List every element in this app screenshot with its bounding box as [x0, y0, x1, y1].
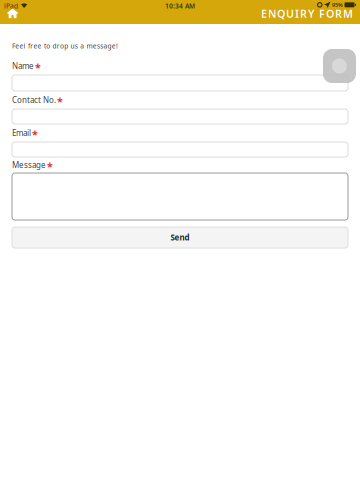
- staticText: Feel free to drop us a message!: [12, 42, 118, 50]
- staticText: ENQUIRY FORM: [261, 6, 353, 21]
- staticText: Send: [170, 232, 189, 243]
- staticText: 95%: [332, 1, 343, 8]
- staticText: *: [32, 127, 38, 141]
- staticText: iPad: [4, 1, 18, 10]
- staticText: 10:34 AM: [165, 1, 195, 10]
- staticText: *: [57, 94, 63, 108]
- button[interactable]: Home: [0, 0, 25, 22]
- staticText: Message: [12, 160, 46, 170]
- staticText: Name: [12, 61, 34, 71]
- staticText: *: [47, 159, 53, 173]
- staticText: Email: [12, 128, 31, 138]
- staticText: Contact No.: [12, 95, 56, 105]
- button[interactable]: Send: [12, 227, 348, 248]
- staticText: *: [35, 60, 41, 74]
